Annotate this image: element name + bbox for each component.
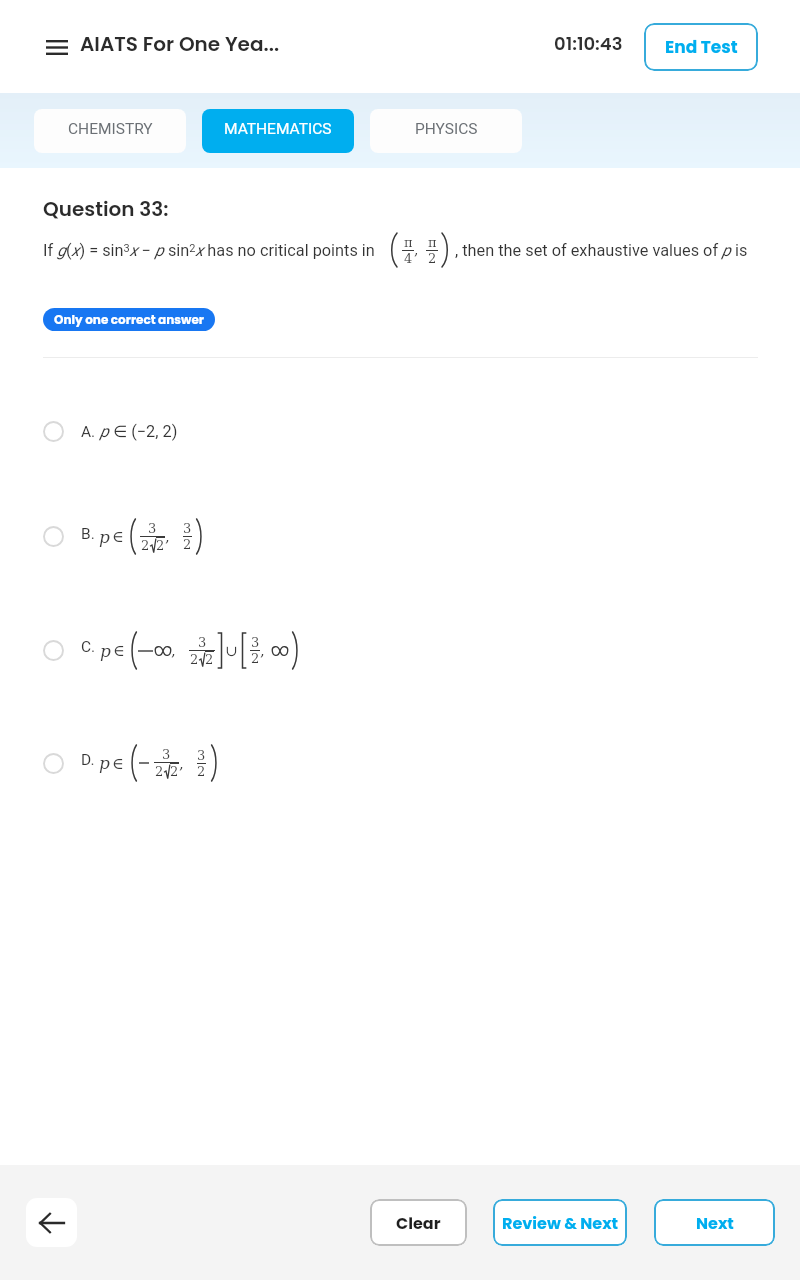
staticText: 2 xyxy=(156,538,165,553)
button[interactable]: Menu xyxy=(46,36,68,58)
button[interactable]: Clear xyxy=(370,1199,467,1246)
staticText: 2 xyxy=(428,251,437,266)
staticText: 2 xyxy=(197,764,206,779)
staticText: 2 xyxy=(251,651,260,666)
button[interactable]: MATHEMATICS xyxy=(202,109,354,153)
button[interactable]: PHYSICS xyxy=(370,109,522,153)
staticText: 01:10:43 xyxy=(554,31,623,56)
staticText: Review & Next xyxy=(502,1212,619,1234)
staticText: , xyxy=(171,642,176,659)
staticText: p xyxy=(99,753,110,773)
button[interactable]: D. xyxy=(0,707,800,819)
staticText: 4 xyxy=(404,251,413,266)
staticText: 3 xyxy=(162,747,171,762)
staticText: ∈ xyxy=(113,641,125,660)
staticText: , then the set of exhaustive values of p… xyxy=(451,241,748,260)
button[interactable]: Back xyxy=(26,1198,77,1247)
button[interactable]: Next xyxy=(654,1199,775,1246)
staticText: Clear xyxy=(396,1212,441,1234)
staticText: 3 xyxy=(148,521,157,536)
staticText: p ∈ (−2, 2) xyxy=(100,422,178,441)
staticText: 2 xyxy=(170,764,179,779)
button[interactable]: A. xyxy=(0,383,800,480)
staticText: If g(x) = sin3x − p sin2x has no critica… xyxy=(43,241,375,260)
staticText: C. xyxy=(81,638,96,656)
staticText: Next xyxy=(696,1212,734,1234)
staticText: MATHEMATICS xyxy=(224,120,332,138)
staticText: ∈ xyxy=(112,754,124,773)
staticText: 3 xyxy=(198,635,207,650)
staticText: CHEMISTRY xyxy=(68,120,153,138)
staticText: , xyxy=(260,642,265,659)
staticText: D. xyxy=(81,751,95,769)
staticText: π xyxy=(404,235,413,250)
staticText: PHYSICS xyxy=(415,120,478,138)
button[interactable]: C. xyxy=(0,593,800,707)
button[interactable]: End Test xyxy=(644,23,758,71)
staticText: ∈ xyxy=(112,527,124,546)
staticText: 2 xyxy=(155,764,164,779)
staticText: p xyxy=(100,641,111,661)
staticText: 2 xyxy=(205,652,214,667)
button[interactable]: B. xyxy=(0,480,800,593)
staticText: End Test xyxy=(665,35,738,59)
button[interactable]: CHEMISTRY xyxy=(34,109,186,153)
staticText: 2 xyxy=(141,538,150,553)
button[interactable]: Review & Next xyxy=(493,1199,627,1246)
staticText: p xyxy=(99,527,110,547)
staticText: 3 xyxy=(251,635,260,650)
staticText: 3 xyxy=(183,521,192,536)
staticText: π xyxy=(428,235,437,250)
staticText: 2 xyxy=(183,537,192,552)
staticText: B. xyxy=(81,525,95,543)
staticText: , xyxy=(165,528,170,545)
staticText: ∪ xyxy=(225,642,238,659)
staticText: 2 xyxy=(190,652,199,667)
staticText: , xyxy=(414,242,419,258)
staticText: Question 33: xyxy=(43,195,169,223)
staticText: Only one correct answer xyxy=(54,311,204,328)
staticText: AIATS For One Yea... xyxy=(80,30,280,58)
staticText: , xyxy=(179,755,184,772)
button[interactable]: Only one correct answer xyxy=(43,308,215,331)
staticText: A. xyxy=(81,423,96,441)
staticText: 3 xyxy=(197,748,206,763)
